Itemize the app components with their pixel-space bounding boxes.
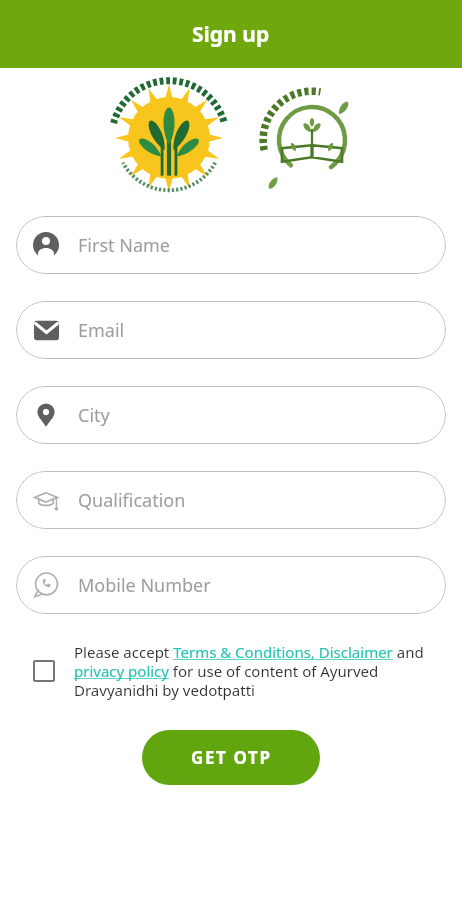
staticText: Sign up — [192, 20, 270, 49]
button[interactable]: Accept terms checkbox — [26, 653, 62, 689]
other: Accept terms checkbox — [33, 660, 55, 682]
button[interactable]: Email — [16, 301, 446, 359]
staticText: City — [78, 403, 110, 428]
staticText: Email — [78, 318, 125, 343]
staticText: First Name — [78, 233, 170, 258]
button[interactable]: First Name — [16, 216, 446, 274]
staticText: Please accept Terms & Conditions, Discla… — [74, 642, 440, 700]
button[interactable]: Qualification — [16, 471, 446, 529]
button[interactable]: Mobile Number — [16, 556, 446, 614]
staticText: Qualification — [78, 488, 186, 513]
button[interactable]: GET OTP — [142, 730, 320, 785]
staticText: GET OTP — [191, 746, 272, 769]
button[interactable]: City — [16, 386, 446, 444]
staticText: Mobile Number — [78, 573, 211, 598]
